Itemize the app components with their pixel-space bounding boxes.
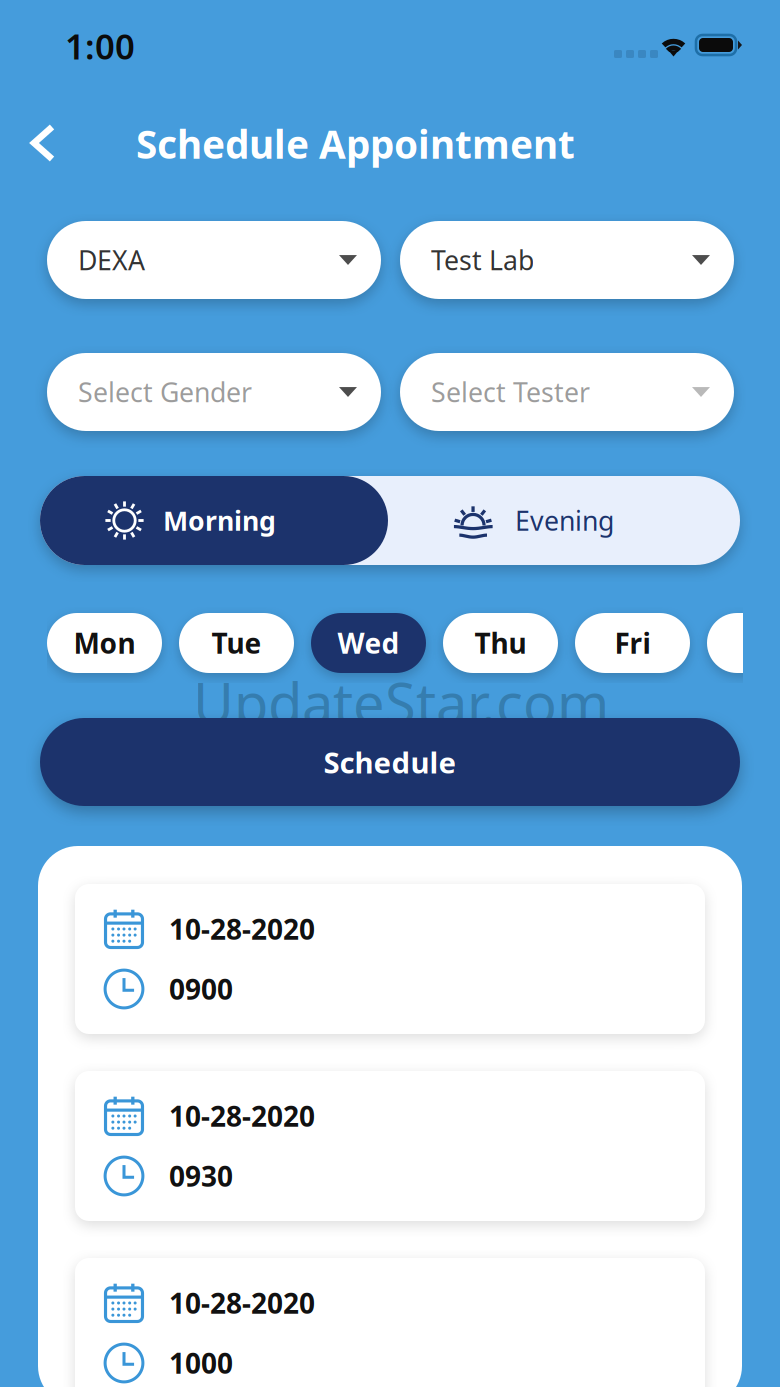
button[interactable]: Morning <box>40 476 388 565</box>
staticText: DEXA <box>78 242 145 278</box>
staticText: Sat <box>742 624 780 662</box>
staticText: Tue <box>211 624 261 662</box>
staticText: Schedule <box>323 742 456 781</box>
button[interactable]: DEXA <box>47 221 381 299</box>
staticText: Mon <box>73 624 135 662</box>
staticText: 0900 <box>169 970 233 1008</box>
staticText: 1000 <box>169 1344 233 1382</box>
button[interactable]: Thu <box>443 613 558 673</box>
staticText: Test Lab <box>431 242 534 278</box>
staticText: Thu <box>474 624 526 662</box>
button[interactable]: Wed <box>311 613 426 673</box>
staticText: 0930 <box>169 1157 233 1195</box>
staticText: Select Tester <box>431 374 590 410</box>
button[interactable]: Select Gender <box>47 353 381 431</box>
staticText: 10-28-2020 <box>169 910 315 948</box>
staticText: Morning <box>163 503 276 538</box>
button[interactable]: Sat <box>707 613 780 673</box>
button[interactable]: Tue <box>179 613 294 673</box>
button[interactable]: Select Tester <box>400 353 734 431</box>
button[interactable]: Evening <box>388 476 740 565</box>
button[interactable]: 10-28-2020 <box>75 1071 705 1221</box>
button[interactable]: Back <box>13 115 73 171</box>
button[interactable]: Test Lab <box>400 221 734 299</box>
button[interactable]: Schedule <box>40 718 740 806</box>
staticText: Select Gender <box>78 374 252 410</box>
button[interactable]: 10-28-2020 <box>75 1258 705 1387</box>
button[interactable]: 10-28-2020 <box>75 884 705 1034</box>
button[interactable]: Fri <box>575 613 690 673</box>
staticText: Wed <box>337 624 399 662</box>
staticText: 10-28-2020 <box>169 1097 315 1135</box>
staticText: UpdateStar.com <box>193 665 609 739</box>
staticText: 1:00 <box>65 23 135 69</box>
staticText: Evening <box>515 503 614 538</box>
button[interactable]: Mon <box>47 613 162 673</box>
staticText: 10-28-2020 <box>169 1284 315 1322</box>
staticText: Schedule Appointment <box>136 118 575 169</box>
staticText: Fri <box>614 624 650 662</box>
